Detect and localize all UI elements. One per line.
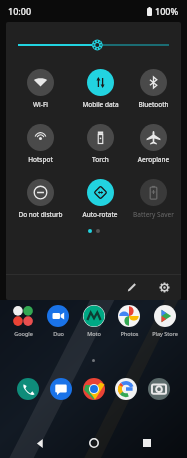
button[interactable]: Battery Saver <box>130 178 177 220</box>
button[interactable]: Mobile data <box>70 68 130 110</box>
button[interactable]: Duo <box>41 305 75 337</box>
staticText: Torch <box>92 155 109 164</box>
button[interactable]: Wi-Fi <box>10 68 70 110</box>
staticText: Do not disturb <box>18 210 63 219</box>
button[interactable]: Brightness <box>18 34 169 56</box>
button[interactable]: Do not disturb <box>10 178 70 220</box>
staticText: Battery Saver <box>133 210 174 219</box>
button[interactable]: Home <box>81 430 107 456</box>
staticText: Duo <box>53 330 64 337</box>
button[interactable]: Aeroplane mode <box>130 123 177 165</box>
button[interactable]: Settings <box>155 278 173 296</box>
staticText: Mobile data <box>82 100 119 109</box>
staticText: Moto <box>87 330 101 337</box>
button[interactable]: CAMERA <box>146 376 172 402</box>
staticText: 10:00 <box>8 5 32 17</box>
staticText: 100% <box>155 5 179 17</box>
button[interactable]: Hotspot <box>10 123 70 165</box>
staticText: Google <box>14 330 33 337</box>
staticText: Hotspot <box>28 155 53 164</box>
button[interactable]: Play Store <box>148 305 182 337</box>
button[interactable]: Google <box>6 305 40 337</box>
button[interactable]: Back <box>27 430 53 456</box>
staticText: Auto-rotate <box>82 210 118 219</box>
button[interactable]: PHONE <box>15 376 41 402</box>
button[interactable]: Auto-rotate <box>70 178 130 220</box>
button[interactable]: SEARCH <box>113 376 139 402</box>
button[interactable]: Edit tiles <box>123 278 141 296</box>
button[interactable]: Recents <box>134 430 160 456</box>
button[interactable]: CHROME <box>81 376 107 402</box>
staticText: Photos <box>120 330 139 337</box>
button[interactable]: Photos <box>112 305 146 337</box>
staticText: Wi-Fi <box>33 100 48 109</box>
button[interactable]: MESSAGES <box>48 376 74 402</box>
staticText: Play Store <box>152 330 178 337</box>
button[interactable]: Torch <box>70 123 130 165</box>
button[interactable]: Bluetooth <box>130 68 177 110</box>
button[interactable]: Moto <box>77 305 111 337</box>
staticText: Aeroplane mode <box>130 155 177 164</box>
staticText: Bluetooth <box>138 100 169 109</box>
